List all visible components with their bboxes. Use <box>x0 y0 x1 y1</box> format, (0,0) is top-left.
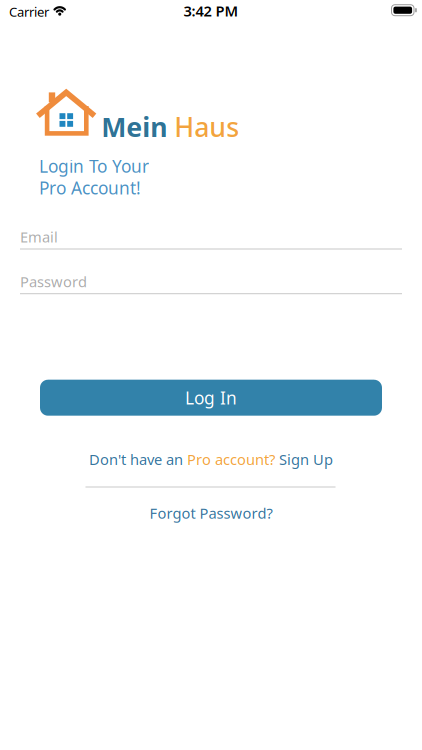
staticText: Log In <box>185 386 237 409</box>
staticText: Forgot Password? <box>149 503 272 523</box>
button[interactable]: Forgot Password? <box>149 503 272 523</box>
button[interactable]: Email <box>20 227 402 250</box>
button[interactable]: Log In <box>40 380 382 416</box>
staticText: Email <box>20 227 58 246</box>
staticText: Sign Up <box>275 449 333 469</box>
staticText: Carrier <box>9 3 49 21</box>
button[interactable]: Don't have an <box>89 449 333 469</box>
staticText: Mein <box>101 109 167 144</box>
staticText: Haus <box>174 109 239 144</box>
staticText: 3:42 PM <box>183 1 238 21</box>
staticText: Pro account? <box>187 449 275 469</box>
staticText: Password <box>20 272 87 291</box>
button[interactable]: Password <box>20 272 402 295</box>
staticText: Don't have an <box>89 449 187 469</box>
staticText: Login To Your <box>39 154 149 177</box>
staticText: Pro Account! <box>39 176 141 199</box>
